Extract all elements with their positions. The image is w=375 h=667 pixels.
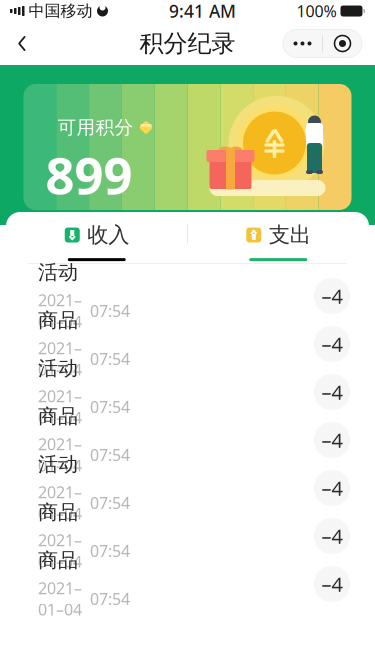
button[interactable]: 返回 xyxy=(0,22,44,65)
staticText: 07:54 xyxy=(90,396,130,417)
staticText: 9:41 AM xyxy=(169,0,236,22)
staticText: –4 xyxy=(321,523,342,549)
staticText: 积分纪录 xyxy=(139,29,235,58)
button[interactable]: 商品 xyxy=(6,512,369,560)
staticText: 商品 xyxy=(38,548,78,573)
staticText: 支出 xyxy=(269,222,311,248)
staticText: 活动 xyxy=(38,356,78,381)
staticText: 07:54 xyxy=(90,300,130,321)
staticText: 收入 xyxy=(87,222,129,248)
staticText: 07:54 xyxy=(90,540,130,561)
staticText: 2021–01–04 xyxy=(38,337,82,380)
button[interactable]: 商品 xyxy=(6,416,369,464)
button[interactable]: 更多 xyxy=(283,29,322,57)
staticText: 07:54 xyxy=(90,444,130,465)
staticText: –4 xyxy=(321,331,342,357)
staticText: –4 xyxy=(321,475,342,501)
staticText: 可用积分 xyxy=(57,116,133,139)
staticText: 07:54 xyxy=(90,492,130,513)
button[interactable]: 支出 xyxy=(187,212,369,263)
staticText: 2021–01–04 xyxy=(38,577,82,620)
staticText: 活动 xyxy=(38,260,78,285)
staticText: 899 xyxy=(45,141,132,208)
staticText: 商品 xyxy=(38,404,78,429)
staticText: 商品 xyxy=(38,500,78,525)
button[interactable]: 关闭 xyxy=(323,29,362,57)
staticText: –4 xyxy=(321,283,342,309)
staticText: 活动 xyxy=(38,452,78,477)
staticText: 100% xyxy=(296,0,336,22)
staticText: 07:54 xyxy=(90,588,130,609)
staticText: 中国移动 xyxy=(28,1,92,21)
staticText: 2021–01–04 xyxy=(38,481,82,524)
button[interactable]: 收入 xyxy=(6,212,187,263)
staticText: 商品 xyxy=(38,308,78,333)
button[interactable]: 商品 xyxy=(6,320,369,368)
staticText: 2021–01–04 xyxy=(38,433,82,476)
staticText: 2021–01–04 xyxy=(38,289,82,332)
staticText: 07:54 xyxy=(90,348,130,369)
staticText: –4 xyxy=(321,427,342,453)
staticText: 2021–01–04 xyxy=(38,385,82,428)
button[interactable]: 活动 xyxy=(6,368,369,416)
button[interactable]: 活动 xyxy=(6,464,369,512)
staticText: 2021–01–04 xyxy=(38,529,82,572)
button[interactable]: 商品 xyxy=(6,560,369,608)
staticText: –4 xyxy=(321,379,342,405)
button[interactable]: 活动 xyxy=(6,272,369,320)
staticText: –4 xyxy=(321,571,342,597)
